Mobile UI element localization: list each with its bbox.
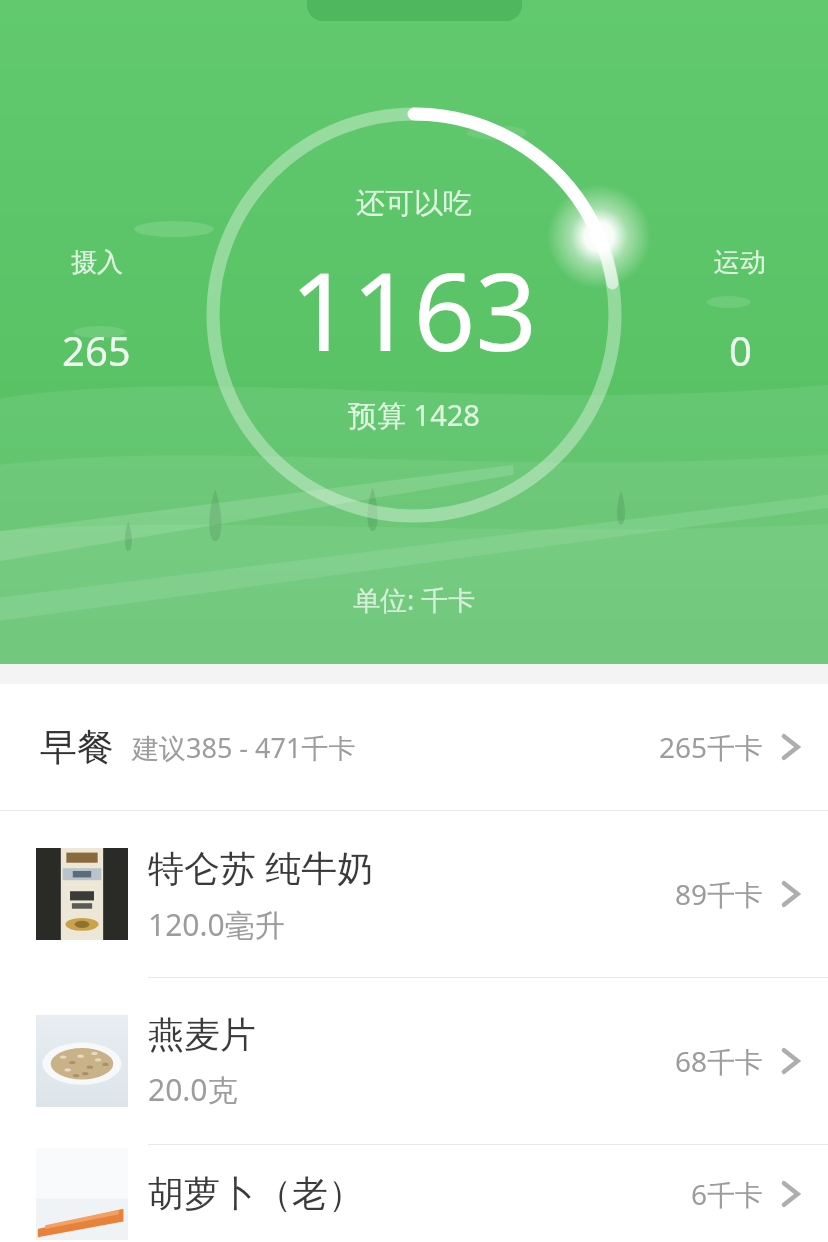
staticText: 运动 (714, 246, 766, 279)
button[interactable]: 早餐 (0, 684, 828, 810)
staticText: 早餐 (40, 724, 114, 771)
button[interactable]: 胡萝卜（老） (0, 1145, 828, 1242)
staticText: 特仑苏 纯牛奶 (148, 843, 374, 892)
staticText: 68千卡 (675, 1042, 764, 1080)
staticText: 265 (62, 323, 131, 377)
staticText: 预算 1428 (348, 395, 480, 435)
staticText: 0 (729, 323, 752, 377)
staticText: 燕麦片 (148, 1012, 256, 1057)
other: Open details (780, 1176, 802, 1212)
other: Open details (780, 1043, 802, 1079)
staticText: 摄入 (71, 246, 123, 279)
staticText: 还可以吃 (356, 185, 472, 222)
staticText: 120.0毫升 (148, 904, 285, 945)
button[interactable]: 燕麦片 (0, 978, 828, 1145)
staticText: 265千卡 (659, 728, 764, 766)
staticText: 20.0克 (148, 1069, 238, 1110)
staticText: 单位: 千卡 (353, 581, 476, 618)
staticText: 胡萝卜（老） (148, 1171, 364, 1216)
other: Open details (780, 729, 802, 765)
button[interactable]: 特仑苏 纯牛奶 (0, 811, 828, 978)
other: Open details (780, 876, 802, 912)
staticText: 89千卡 (675, 875, 764, 913)
staticText: 建议385 - 471千卡 (132, 729, 356, 766)
staticText: 6千卡 (691, 1175, 764, 1213)
staticText: 1163 (290, 236, 538, 383)
